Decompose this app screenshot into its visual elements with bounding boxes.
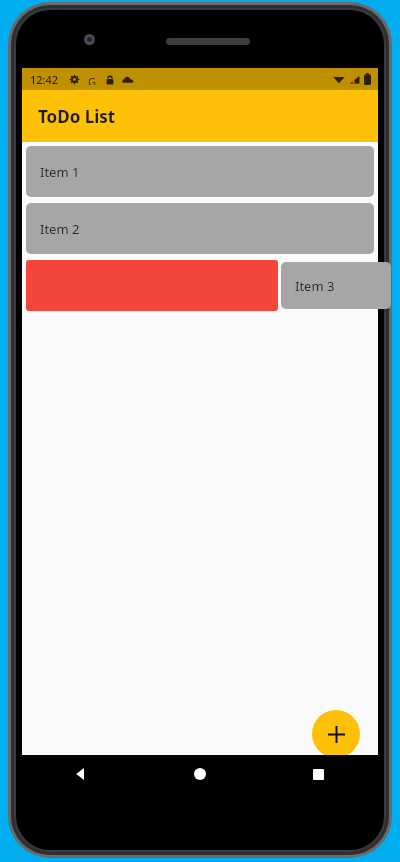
button[interactable]: Item 2 (26, 203, 374, 254)
button[interactable]: Item 1 (26, 146, 374, 197)
button[interactable]: Add item (312, 710, 360, 758)
button[interactable]: Back (22, 755, 140, 793)
staticText: 12:42 (30, 72, 59, 87)
button[interactable]: Home (140, 755, 259, 793)
button[interactable]: Recent apps (259, 755, 378, 793)
button[interactable]: Delete (26, 260, 278, 311)
staticText: Item 3 (295, 277, 335, 295)
staticText: Item 1 (40, 163, 80, 181)
button[interactable]: Item 3 (281, 262, 391, 309)
staticText: G (88, 74, 97, 85)
staticText: Item 2 (40, 220, 80, 238)
staticText: ToDo List (38, 105, 116, 128)
